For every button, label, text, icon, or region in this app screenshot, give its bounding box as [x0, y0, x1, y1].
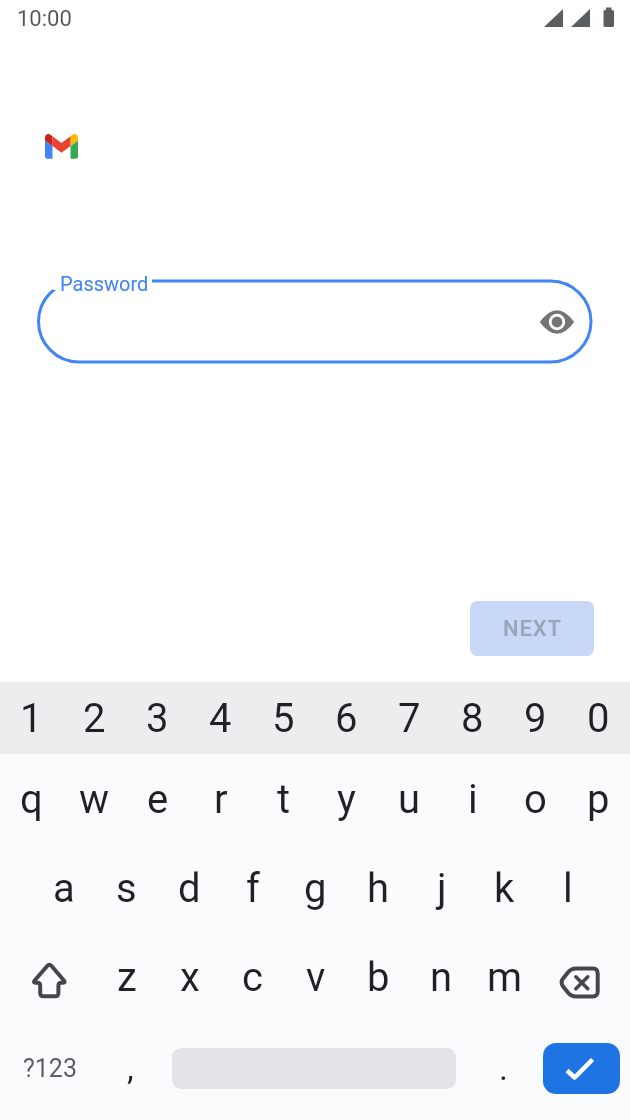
button[interactable] [537, 302, 577, 342]
button[interactable]: m [473, 932, 536, 1023]
button[interactable]: 0 [567, 682, 630, 754]
staticText: 10:00 [17, 6, 72, 32]
button[interactable]: n [410, 932, 473, 1023]
staticText: y [337, 776, 356, 823]
staticText: 4 [209, 695, 232, 742]
button[interactable]: g [284, 842, 347, 934]
staticText: w [79, 776, 110, 823]
button[interactable]: k [473, 842, 536, 934]
button[interactable]: e [126, 754, 189, 845]
staticText: b [367, 954, 390, 1001]
staticText: c [242, 954, 263, 1001]
staticText: u [398, 776, 421, 823]
staticText: k [494, 865, 515, 912]
staticText: 9 [524, 695, 547, 742]
button[interactable] [536, 937, 620, 1028]
staticText: r [214, 776, 228, 823]
button[interactable]: 1 [0, 682, 63, 754]
staticText: t [277, 776, 291, 823]
staticText: o [524, 776, 547, 823]
staticText: 1 [20, 695, 43, 742]
button[interactable]: y [315, 754, 378, 845]
staticText: q [20, 776, 43, 823]
button[interactable]: ?123 [10, 1023, 90, 1113]
staticText: x [180, 954, 200, 1001]
button[interactable]: o [504, 754, 567, 845]
staticText: p [587, 776, 610, 823]
button[interactable]: d [158, 842, 221, 934]
button[interactable]: x [158, 932, 221, 1023]
staticText: e [147, 776, 169, 823]
button[interactable] [543, 1043, 620, 1094]
button[interactable]: w [63, 754, 126, 845]
button[interactable]: 4 [189, 682, 252, 754]
staticText: NEXT [503, 616, 562, 642]
staticText: a [53, 865, 75, 912]
staticText: l [563, 865, 573, 912]
staticText: n [430, 954, 453, 1001]
button[interactable]: a [32, 842, 95, 934]
button[interactable]: s [95, 842, 158, 934]
staticText: ?123 [23, 1054, 77, 1083]
button[interactable]: q [0, 754, 63, 845]
button[interactable]: 7 [378, 682, 441, 754]
button[interactable]: f [221, 842, 284, 934]
button[interactable]: l [536, 842, 599, 934]
button[interactable]: 2 [63, 682, 126, 754]
staticText: g [304, 865, 327, 912]
button[interactable]: p [567, 754, 630, 845]
staticText: Password [60, 272, 149, 295]
staticText: f [246, 865, 260, 912]
staticText: , [127, 1048, 134, 1088]
button[interactable]: 3 [126, 682, 189, 754]
button[interactable]: , [99, 1023, 162, 1113]
staticText: m [487, 954, 523, 1001]
button[interactable]: NEXT [470, 601, 594, 656]
button[interactable]: b [347, 932, 410, 1023]
button[interactable]: 9 [504, 682, 567, 754]
staticText: v [306, 954, 326, 1001]
staticText: 8 [461, 695, 484, 742]
staticText: 5 [272, 695, 295, 742]
staticText: s [116, 865, 137, 912]
staticText: 3 [146, 695, 169, 742]
staticText: d [178, 865, 201, 912]
button[interactable]: 8 [441, 682, 504, 754]
button[interactable]: v [284, 932, 347, 1023]
staticText: j [437, 865, 447, 912]
staticText: 0 [587, 695, 610, 742]
button[interactable] [38, 281, 591, 362]
staticText: h [367, 865, 390, 912]
staticText: 6 [335, 695, 358, 742]
button[interactable]: 5 [252, 682, 315, 754]
staticText: 7 [398, 695, 421, 742]
button[interactable]: r [189, 754, 252, 845]
button[interactable]: j [410, 842, 473, 934]
button[interactable]: . [472, 1023, 535, 1113]
button[interactable] [10, 937, 94, 1028]
button[interactable]: 6 [315, 682, 378, 754]
staticText: z [117, 954, 137, 1001]
button[interactable]: t [252, 754, 315, 845]
button[interactable]: i [441, 754, 504, 845]
button[interactable]: h [347, 842, 410, 934]
staticText: i [468, 776, 478, 823]
staticText: . [499, 1048, 508, 1088]
staticText: 2 [83, 695, 106, 742]
button[interactable]: z [95, 932, 158, 1023]
button[interactable]: u [378, 754, 441, 845]
button[interactable]: c [221, 932, 284, 1023]
